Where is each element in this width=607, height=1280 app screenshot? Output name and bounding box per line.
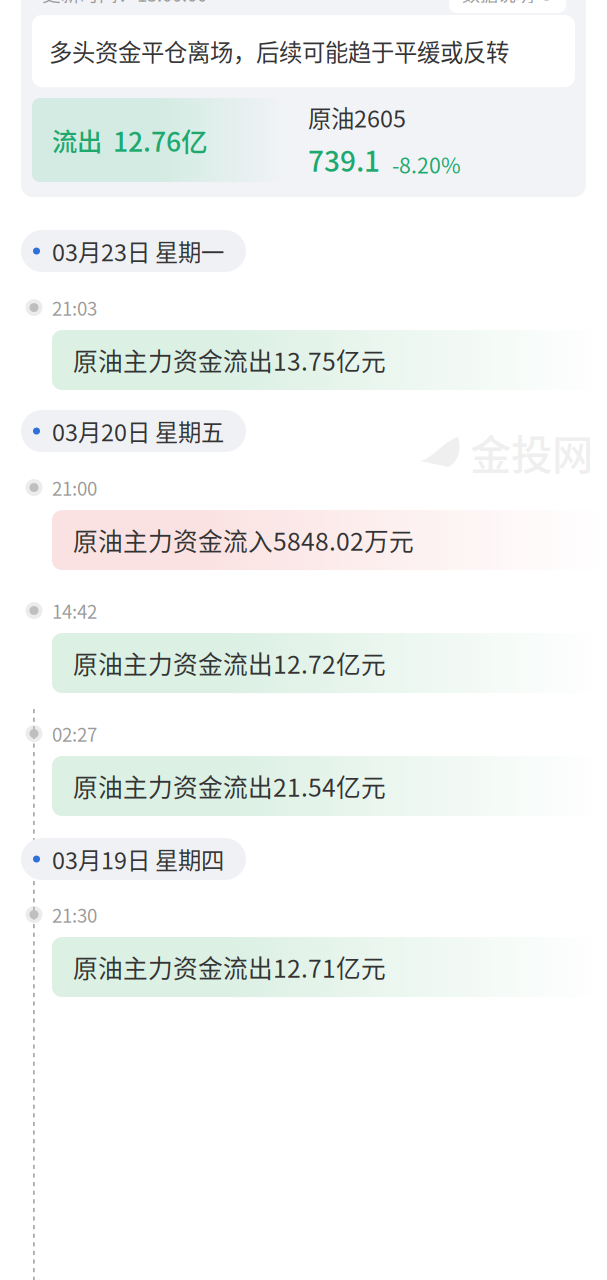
staticText: 原油主力资金流入5848.02万元 — [73, 522, 414, 558]
staticText: 03月19日 星期四 — [52, 842, 224, 876]
staticText: 21:03 — [52, 294, 97, 321]
staticText: ? — [543, 0, 549, 3]
staticText: 数据说明 — [462, 0, 534, 7]
button[interactable]: 数据说明 — [449, 0, 566, 13]
staticText: 02:27 — [52, 720, 97, 747]
staticText: 12.76亿 — [113, 121, 208, 159]
staticText: -8.20% — [392, 149, 461, 180]
staticText: 原油主力资金流出21.54亿元 — [73, 768, 386, 804]
staticText: 14:42 — [52, 597, 97, 624]
staticText: 流出 — [52, 122, 102, 158]
staticText: 21:30 — [52, 901, 97, 928]
staticText: 多头资金平仓离场，后续可能趋于平缓或反转 — [49, 34, 509, 68]
staticText: 21:00 — [52, 474, 97, 501]
staticText: 03月20日 星期五 — [52, 414, 224, 448]
staticText: 原油主力资金流出13.75亿元 — [73, 342, 386, 378]
staticText: 739.1 — [308, 139, 380, 180]
staticText: 原油2605 — [308, 100, 406, 134]
staticText: 原油主力资金流出12.71亿元 — [73, 949, 386, 985]
staticText: 原油主力资金流出12.72亿元 — [73, 645, 386, 681]
staticText: 03月23日 星期一 — [52, 234, 224, 268]
staticText: 更新时间：15:00:00 — [42, 0, 207, 7]
staticText: 金投网 — [470, 422, 593, 482]
